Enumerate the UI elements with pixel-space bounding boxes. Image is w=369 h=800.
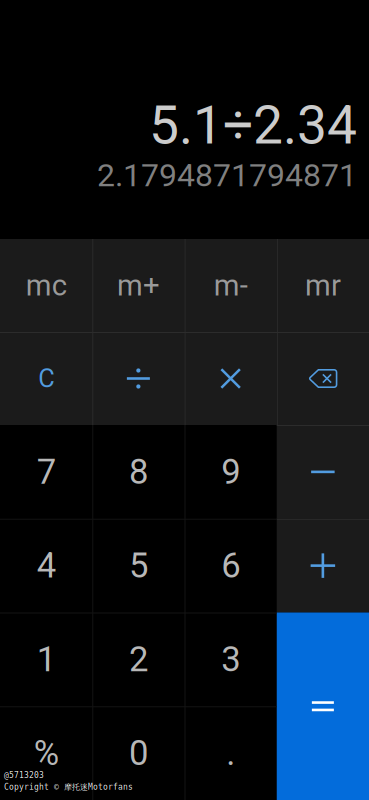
button[interactable]: .: [184, 706, 277, 800]
staticText: 3: [221, 639, 240, 680]
button[interactable]: %: [0, 706, 92, 800]
button[interactable]: 2: [92, 612, 184, 706]
button[interactable]: m-: [184, 239, 277, 332]
staticText: mr: [305, 268, 341, 303]
staticText: C: [38, 364, 54, 393]
button[interactable]: 4: [0, 519, 92, 613]
button[interactable]: 1: [0, 612, 92, 706]
staticText: 7: [37, 452, 56, 492]
button[interactable]: 3: [184, 612, 277, 706]
button[interactable]: 7: [0, 425, 92, 519]
button[interactable]: 6: [184, 519, 277, 613]
button[interactable]: Equals: [277, 612, 369, 800]
staticText: @5713203: [4, 771, 44, 780]
staticText: 5.1÷2.34: [149, 94, 357, 156]
button[interactable]: 8: [92, 425, 184, 519]
staticText: 2.1794871794871: [97, 156, 357, 194]
button[interactable]: Minus: [277, 425, 369, 519]
staticText: mc: [26, 268, 67, 303]
button[interactable]: 5: [92, 519, 184, 613]
staticText: 4: [37, 545, 56, 586]
button[interactable]: mc: [0, 239, 92, 332]
button[interactable]: Multiply: [184, 332, 277, 425]
staticText: 9: [221, 452, 240, 492]
staticText: %: [34, 733, 59, 773]
button[interactable]: Divide: [92, 332, 184, 425]
button[interactable]: Delete: [277, 332, 369, 425]
staticText: 1: [37, 639, 56, 680]
button[interactable]: 9: [184, 425, 277, 519]
button[interactable]: m+: [92, 239, 184, 332]
button[interactable]: Plus: [277, 519, 369, 613]
staticText: .: [226, 733, 235, 773]
staticText: Copyright © 摩托迷Motorfans: [4, 782, 133, 792]
button[interactable]: mr: [277, 239, 369, 332]
staticText: 6: [221, 545, 240, 586]
staticText: 2: [129, 639, 148, 680]
staticText: 0: [129, 733, 148, 773]
staticText: 8: [129, 452, 148, 492]
staticText: m-: [214, 268, 248, 303]
button[interactable]: 0: [92, 706, 184, 800]
staticText: 5: [129, 545, 148, 586]
staticText: m+: [117, 268, 160, 303]
button[interactable]: C: [0, 332, 92, 425]
